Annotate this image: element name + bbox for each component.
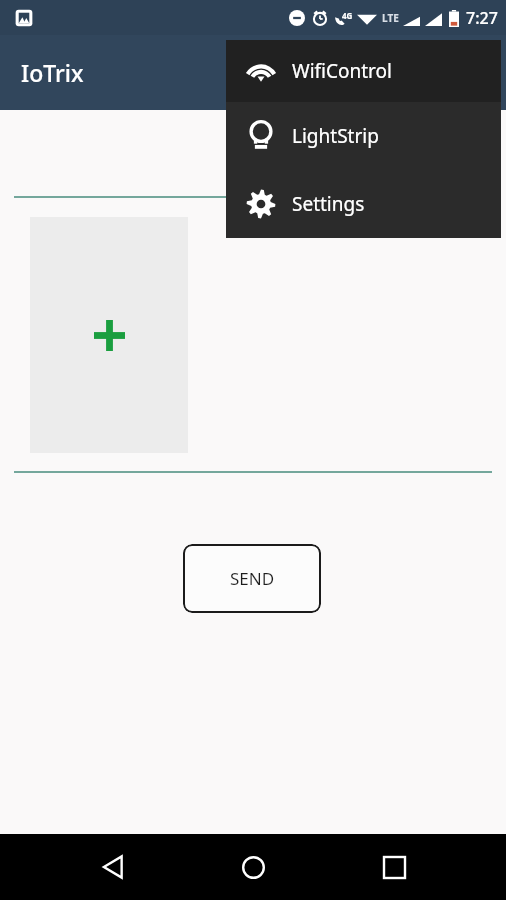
staticText: LTE — [382, 11, 399, 25]
staticText: IoTrix — [21, 57, 84, 88]
button[interactable]: SEND — [183, 544, 321, 613]
staticText: LightStrip — [292, 123, 379, 149]
button[interactable]: LightStrip — [226, 102, 501, 170]
button[interactable]: WifiControl — [226, 40, 501, 102]
button[interactable]: Add device — [30, 217, 188, 453]
staticText: 7:27 — [466, 7, 498, 29]
staticText: 4G — [342, 10, 353, 21]
button[interactable]: Settings — [226, 170, 501, 238]
button[interactable]: Back — [85, 839, 141, 895]
staticText: SEND — [230, 567, 275, 590]
button[interactable]: Recents — [366, 839, 422, 895]
staticText: WifiControl — [292, 58, 392, 84]
staticText: Settings — [292, 191, 365, 217]
button[interactable]: Home — [225, 839, 281, 895]
button[interactable]: More options — [458, 49, 506, 97]
